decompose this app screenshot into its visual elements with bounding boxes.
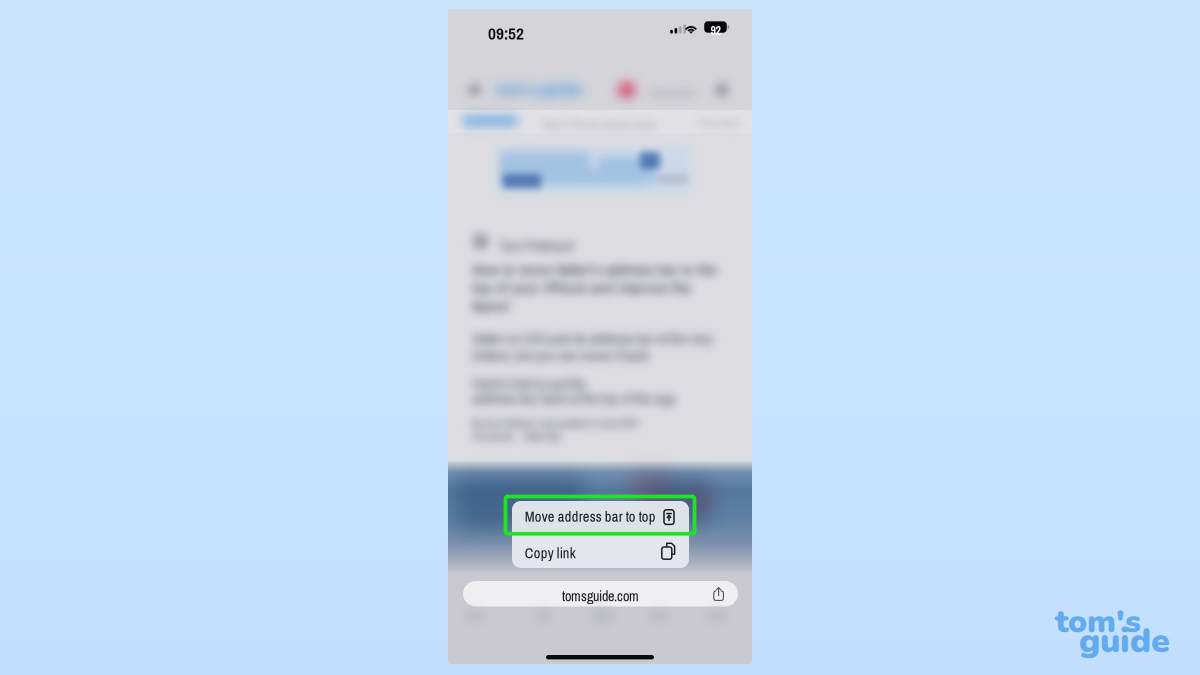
staticText: Copy link [525,543,576,563]
staticText: Move address bar to top [525,507,656,526]
staticText: tomsguide.com [562,587,639,606]
button[interactable]: Move address bar to top [512,501,689,534]
staticText: 09:52 [488,21,524,45]
staticText: guide [1079,618,1170,664]
button[interactable]: tomsguide.com [463,581,738,606]
staticText: tom's [1055,600,1141,644]
staticText: 92 [710,22,720,39]
button[interactable]: Copy link [512,535,689,568]
